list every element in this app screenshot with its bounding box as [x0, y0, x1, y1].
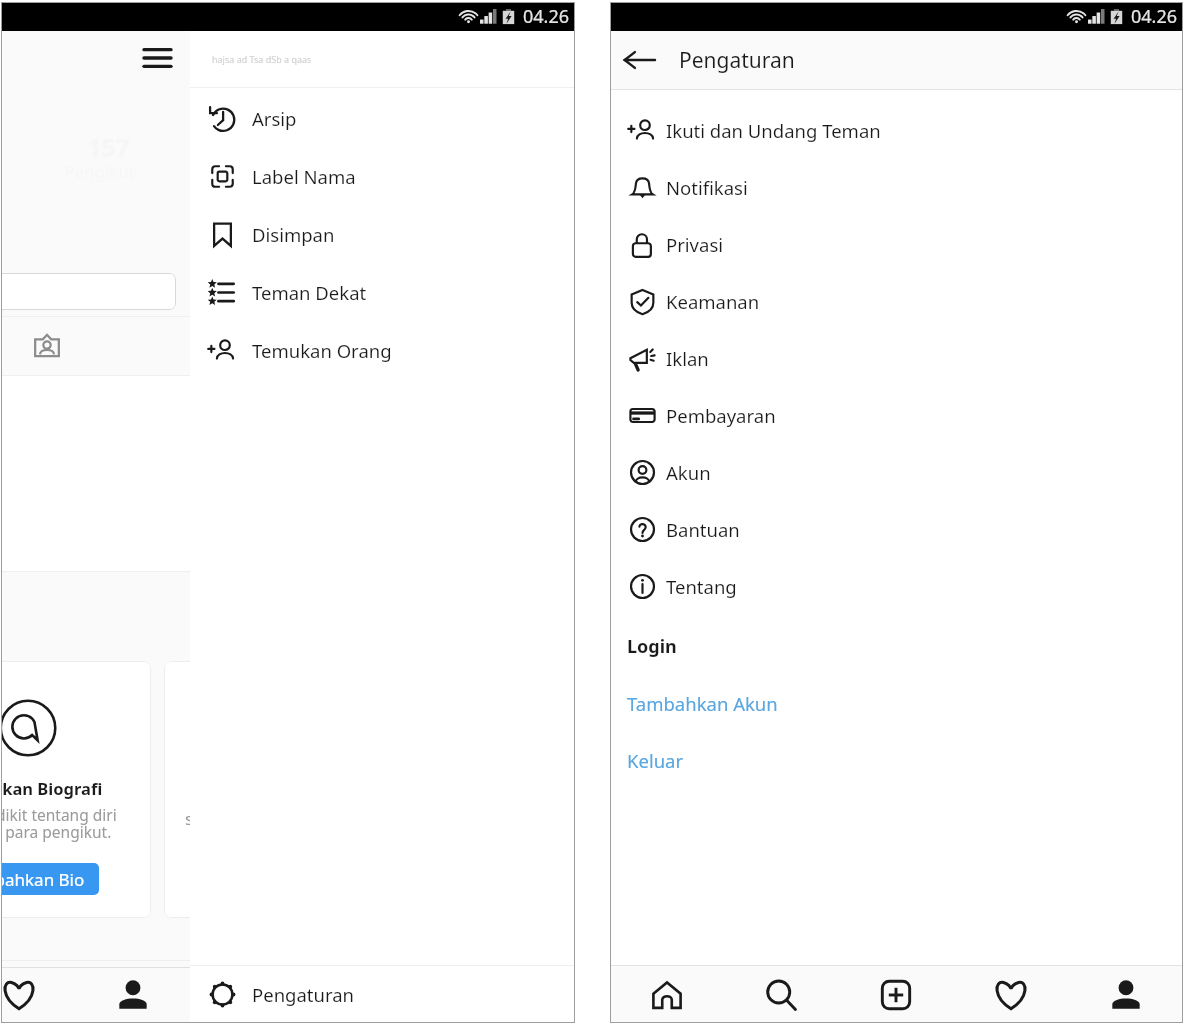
button[interactable]: Activity [1, 972, 41, 1017]
staticText: s [185, 807, 191, 830]
button[interactable]: Profile [110, 972, 155, 1017]
staticText: Temukan Orang [252, 338, 392, 363]
button[interactable]: Home [610, 966, 724, 1023]
button[interactable]: Privasi [610, 216, 1183, 273]
staticText: Notifikasi [666, 175, 748, 200]
button[interactable]: Keamanan [610, 273, 1183, 330]
button[interactable]: Arsip [190, 89, 575, 147]
staticText: Ikuti dan Undang Teman [666, 118, 881, 143]
button[interactable]: Search [724, 966, 838, 1023]
button[interactable]: Notifikasi [610, 159, 1183, 216]
staticText: Teman Dekat [252, 280, 367, 305]
button[interactable]: Disimpan [190, 205, 575, 263]
button[interactable] [1, 273, 176, 310]
staticText: Keamanan [666, 289, 760, 314]
staticText: Iklan [666, 346, 709, 371]
button[interactable]: Keluar [610, 732, 1183, 789]
staticText: Pembayaran [666, 403, 776, 428]
button[interactable]: Pembayaran [610, 387, 1183, 444]
button[interactable]: Temukan Orang [190, 321, 575, 379]
button[interactable]: Tentang [610, 558, 1183, 615]
staticText: Login [627, 634, 677, 659]
staticText: hajsa ad Tsa dSb a qaas [212, 53, 312, 65]
button[interactable]: Profile [1068, 966, 1183, 1023]
staticText: Tambahkan Akun [627, 691, 778, 716]
staticText: Tambahkan Bio [1, 868, 85, 891]
button[interactable]: Akun [610, 444, 1183, 501]
staticText: Pengaturan [252, 982, 355, 1007]
staticText: 04.26 [523, 4, 570, 29]
staticText: Bantuan [666, 517, 740, 542]
staticText: Ceritakan sedikit tentang diri Anda kepa… [1, 804, 117, 842]
button[interactable]: Pengaturan [190, 966, 575, 1023]
staticText: Pengaturan [679, 46, 795, 75]
button[interactable]: Add post [838, 966, 953, 1023]
staticText: Privasi [666, 232, 724, 257]
button[interactable]: Iklan [610, 330, 1183, 387]
button[interactable]: Activity [953, 966, 1068, 1023]
staticText: Label Nama [252, 164, 356, 189]
button[interactable]: Teman Dekat [190, 263, 575, 321]
button[interactable]: Menu [140, 40, 175, 75]
button[interactable]: Ikuti dan Undang Teman [610, 102, 1183, 159]
button[interactable]: Back [619, 40, 659, 80]
button[interactable]: Label Nama [190, 147, 575, 205]
staticText: Akun [666, 460, 711, 485]
button[interactable]: Bantuan [610, 501, 1183, 558]
button[interactable]: Tambahkan Bio [1, 863, 99, 895]
staticText: Keluar [627, 748, 684, 773]
staticText: Disimpan [252, 222, 335, 247]
staticText: Tentang [666, 574, 737, 599]
staticText: Tambahkan Biografi [1, 777, 103, 799]
staticText: Arsip [252, 106, 297, 131]
button[interactable]: Tambahkan Akun [610, 675, 1183, 732]
staticText: 04.26 [1131, 4, 1178, 29]
